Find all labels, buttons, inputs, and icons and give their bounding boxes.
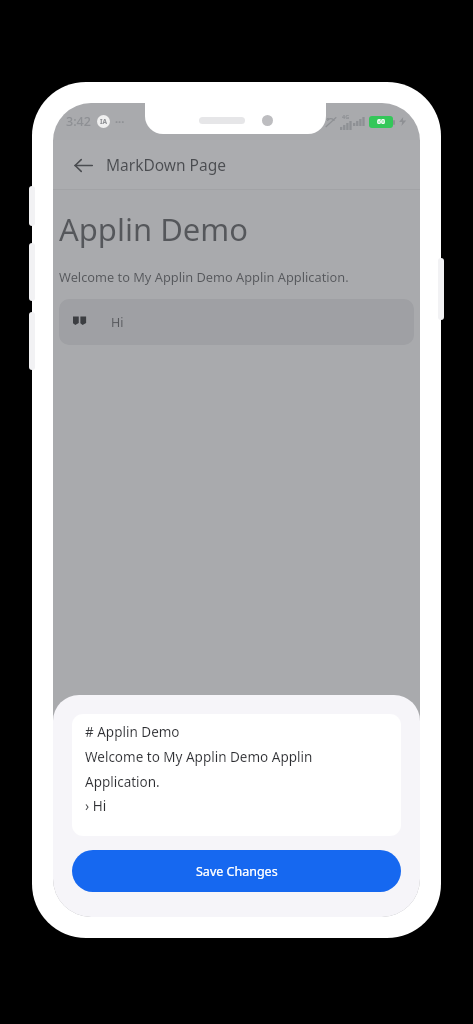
staticText: Hi — [111, 314, 124, 331]
staticText: Application. — [85, 773, 160, 791]
staticText: MarkDown Page — [106, 154, 226, 175]
staticText: 60 — [377, 117, 386, 127]
staticText: IA — [100, 117, 108, 126]
staticText: Applin Demo — [59, 208, 249, 250]
button[interactable]: Save Changes — [72, 850, 401, 892]
staticText: Save Changes — [196, 863, 278, 880]
staticText: Welcome to My Applin Demo Applin — [85, 748, 313, 766]
staticText: › Hi — [85, 797, 107, 815]
button[interactable]: Back — [63, 145, 103, 185]
staticText: Welcome to My Applin Demo Applin Applica… — [59, 268, 349, 285]
staticText: 4G — [342, 113, 350, 120]
button[interactable]: # Applin Demo — [72, 714, 401, 836]
staticText: ··· — [115, 114, 125, 129]
staticText: # Applin Demo — [85, 723, 180, 741]
staticText: 3:42 — [66, 113, 91, 130]
